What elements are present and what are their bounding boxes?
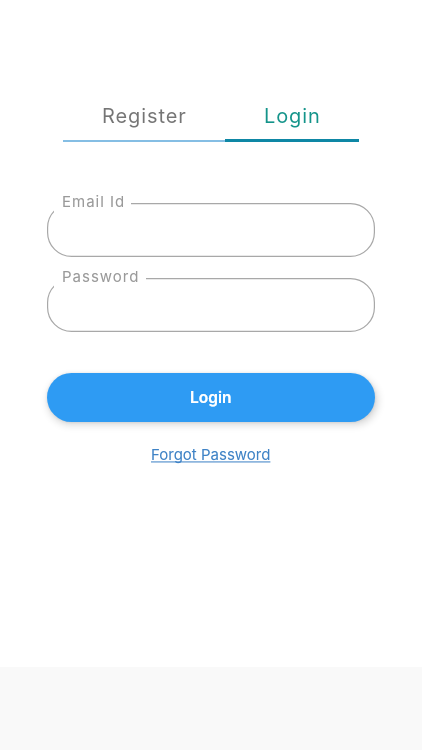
staticText: Email Id xyxy=(62,192,126,210)
button[interactable] xyxy=(47,203,375,257)
button[interactable]: Login xyxy=(225,95,359,136)
button[interactable]: Register xyxy=(63,95,225,136)
staticText: Password xyxy=(62,267,140,285)
button[interactable]: Forgot Password xyxy=(151,445,271,463)
staticText: Register xyxy=(102,104,187,128)
staticText: Login xyxy=(264,104,321,128)
staticText: Login xyxy=(190,388,232,407)
button[interactable]: Login xyxy=(47,373,375,422)
button[interactable] xyxy=(47,278,375,332)
staticText: Forgot Password xyxy=(151,445,271,463)
